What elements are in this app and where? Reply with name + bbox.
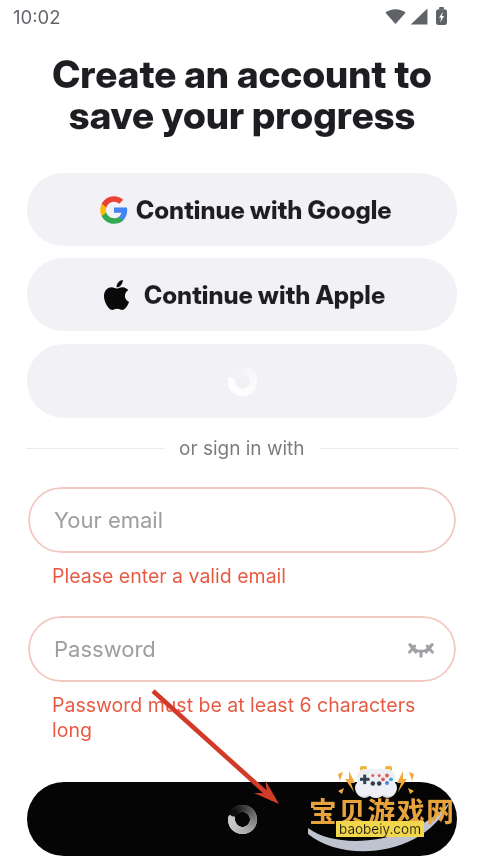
button[interactable]: Continue with Apple (27, 258, 457, 331)
staticText: 10:02 (13, 6, 61, 28)
staticText: Password (54, 636, 156, 663)
other: Show password (408, 636, 434, 662)
staticText: Continue with Apple (144, 280, 386, 310)
button[interactable] (27, 782, 457, 856)
button[interactable]: Continue with Google (27, 173, 457, 246)
staticText: Please enter a valid email (52, 564, 287, 588)
staticText: Create an account to save your progress (34, 51, 450, 138)
staticText: or sign in with (179, 437, 305, 460)
button[interactable]: Password (28, 616, 456, 682)
staticText: Your email (54, 507, 164, 534)
staticText: 宝贝游戏网 (309, 790, 456, 830)
button[interactable]: Your email (28, 487, 456, 553)
staticText: baobeiy.com (339, 821, 421, 837)
staticText: Continue with Google (136, 195, 392, 225)
staticText: Password must be at least 6 characters l… (52, 693, 424, 742)
